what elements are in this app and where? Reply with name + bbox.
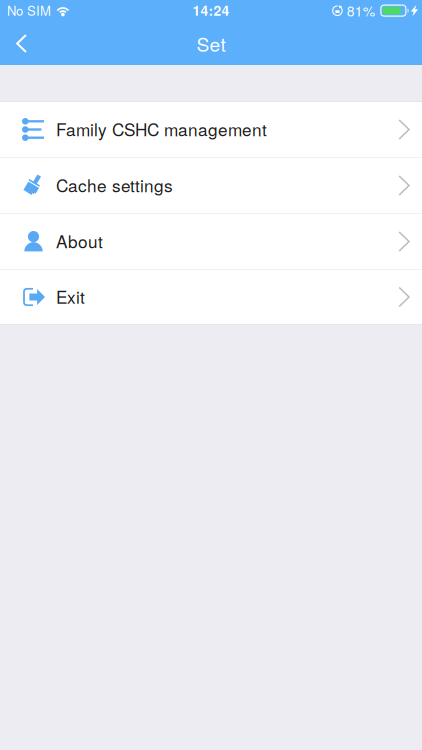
staticText: Exit (56, 284, 85, 308)
staticText: 14:24 (192, 0, 229, 20)
button[interactable]: Back (0, 22, 41, 65)
staticText: Family CSHC management (56, 116, 267, 141)
staticText: Cache settings (56, 172, 173, 197)
staticText: Set (196, 30, 225, 57)
button[interactable]: Exit (0, 270, 422, 324)
button[interactable]: About (0, 214, 422, 269)
staticText: About (56, 228, 103, 253)
staticText: 81% (347, 0, 375, 20)
button[interactable]: Cache settings (0, 158, 422, 213)
staticText: No SIM (7, 1, 51, 19)
button[interactable]: Family CSHC management (0, 102, 422, 157)
